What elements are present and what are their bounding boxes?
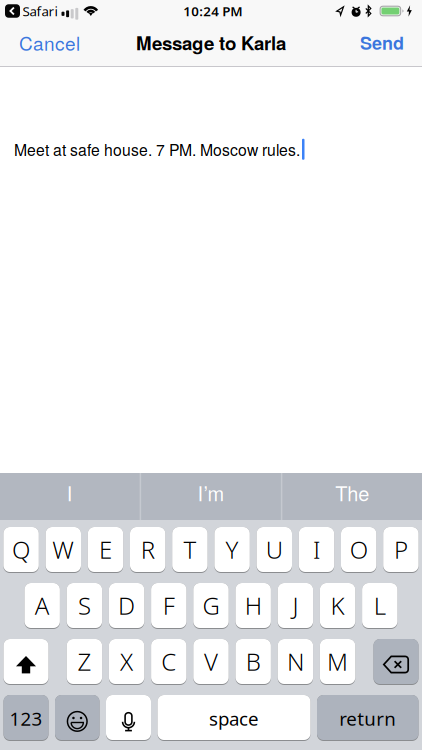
button[interactable]: V — [193, 639, 229, 685]
staticText: E — [99, 534, 112, 565]
staticText: space — [209, 706, 259, 731]
button[interactable]: G — [193, 583, 229, 629]
staticText: D — [118, 590, 135, 621]
staticText: Z — [77, 646, 91, 677]
button[interactable]: J — [278, 583, 313, 629]
staticText: Safari — [22, 2, 57, 20]
button[interactable]: Z — [67, 639, 102, 685]
button[interactable]: X — [109, 639, 144, 685]
button[interactable]: space — [157, 695, 310, 741]
button[interactable]: Emoji — [55, 695, 99, 741]
button[interactable]: T — [172, 527, 208, 573]
staticText: W — [52, 534, 74, 565]
button[interactable]: I — [0, 473, 140, 520]
button[interactable]: The — [282, 473, 422, 520]
button[interactable]: K — [320, 583, 355, 629]
button[interactable]: L — [362, 583, 397, 629]
staticText: Meet at safe house. 7 PM. Moscow rules. — [14, 138, 300, 160]
staticText: Q — [12, 534, 30, 565]
staticText: F — [163, 590, 175, 621]
staticText: O — [350, 534, 368, 565]
button[interactable]: return — [317, 695, 418, 741]
staticText: Message to Karla — [136, 29, 286, 56]
staticText: G — [202, 590, 219, 621]
button[interactable]: Q — [3, 527, 39, 573]
button[interactable]: I’m — [141, 473, 281, 520]
button[interactable]: Send — [360, 30, 404, 55]
staticText: T — [183, 534, 196, 565]
button[interactable]: C — [151, 639, 186, 685]
button[interactable]: W — [46, 527, 81, 573]
button[interactable]: I — [299, 527, 334, 573]
staticText: L — [374, 590, 386, 621]
staticText: M — [327, 646, 348, 677]
staticText: N — [287, 646, 304, 677]
staticText: The — [335, 478, 369, 507]
staticText: Y — [226, 534, 239, 565]
staticText: 10:24 PM — [183, 2, 242, 20]
button[interactable]: B — [235, 639, 271, 685]
button[interactable]: E — [88, 527, 123, 573]
staticText: V — [204, 646, 218, 677]
staticText: C — [161, 646, 176, 677]
staticText: P — [394, 534, 408, 565]
button[interactable]: A — [24, 583, 60, 629]
button[interactable]: Back to Safari — [5, 2, 57, 20]
staticText: B — [246, 646, 261, 677]
button[interactable]: O — [341, 527, 376, 573]
button[interactable]: Shift — [3, 639, 48, 685]
staticText: I — [67, 478, 73, 507]
button[interactable]: R — [130, 527, 165, 573]
staticText: R — [141, 534, 155, 565]
button[interactable]: H — [235, 583, 271, 629]
staticText: Send — [360, 30, 404, 55]
staticText: return — [339, 706, 396, 731]
staticText: U — [266, 534, 283, 565]
button[interactable]: D — [109, 583, 144, 629]
staticText: Cancel — [19, 29, 80, 56]
button[interactable]: Cancel — [19, 29, 80, 56]
staticText: H — [245, 590, 262, 621]
staticText: I — [313, 534, 320, 565]
button[interactable]: S — [67, 583, 102, 629]
button[interactable]: F — [151, 583, 186, 629]
staticText: X — [120, 646, 133, 677]
button[interactable]: U — [257, 527, 292, 573]
button[interactable]: 123 — [3, 695, 48, 741]
staticText: J — [292, 590, 298, 621]
button[interactable]: P — [383, 527, 419, 573]
button[interactable]: Delete — [373, 639, 418, 685]
button[interactable]: N — [278, 639, 313, 685]
staticText: A — [35, 590, 50, 621]
button[interactable]: Dictation — [106, 695, 151, 741]
staticText: K — [331, 590, 345, 621]
button[interactable]: M — [320, 639, 355, 685]
staticText: I’m — [197, 478, 224, 507]
button[interactable]: Y — [214, 527, 250, 573]
staticText: S — [78, 590, 91, 621]
staticText: 123 — [9, 706, 42, 731]
